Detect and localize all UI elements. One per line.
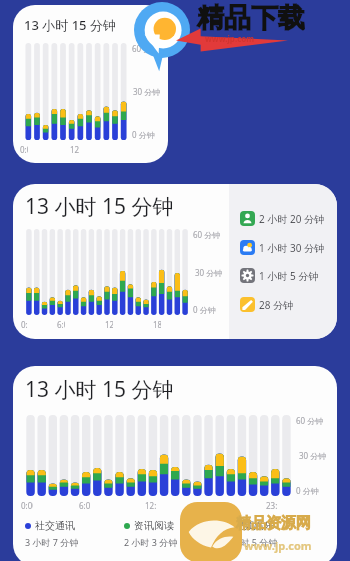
button[interactable]: Notes usage (240, 297, 333, 312)
staticText: 精品资源网 (236, 514, 311, 533)
button[interactable]: 13 小时 15 分钟 (13, 5, 168, 163)
staticText: 6:00 (57, 319, 65, 330)
staticText: 12:00 (70, 144, 79, 155)
staticText: 23:00 (266, 500, 277, 511)
staticText: 28 分钟 (259, 298, 294, 312)
staticText: 2 小时 3 分钟 (124, 536, 178, 548)
button[interactable]: Settings usage (240, 268, 333, 283)
other: Notes usage (240, 297, 255, 312)
staticText: 1 小时 5 分钟 (259, 269, 319, 283)
staticText: 0 分钟 (193, 304, 216, 315)
staticText: 3 小时 7 分钟 (25, 536, 79, 548)
staticText: 12:00 (105, 319, 113, 330)
staticText: 社交通讯 (35, 519, 75, 532)
staticText: 0 分钟 (132, 129, 155, 140)
other: Weather usage (240, 240, 255, 255)
staticText: 30 分钟 (195, 267, 223, 278)
staticText: 13 小时 15 分钟 (24, 16, 116, 34)
button[interactable]: 13 小时 15 分钟 (13, 184, 337, 339)
staticText: 18:00 (211, 500, 222, 511)
staticText: 30 分钟 (133, 86, 161, 97)
staticText: 60 分钟 (132, 43, 160, 54)
staticText: 1 小时 30 分钟 (259, 241, 324, 255)
button[interactable]: Contacts usage (240, 211, 333, 226)
staticText: 0:00 (21, 500, 33, 511)
button[interactable]: 资讯阅读 (124, 519, 224, 548)
staticText: 6:00 (79, 500, 90, 511)
button[interactable]: Weather usage (240, 240, 333, 255)
button[interactable]: 视频娱乐 (224, 519, 324, 548)
button[interactable]: 社交通讯 (25, 519, 124, 548)
staticText: 30 分钟 (299, 450, 327, 461)
other: Settings usage (240, 268, 255, 283)
staticText: 0:00 (20, 144, 28, 155)
staticText: 0:00 (21, 319, 28, 330)
staticText: 60 分钟 (296, 415, 324, 426)
staticText: 13 小时 15 分钟 (25, 192, 174, 221)
staticText: 资讯阅读 (134, 519, 174, 532)
staticText: 视频娱乐 (234, 519, 274, 532)
staticText: www.jp.com (205, 33, 255, 44)
staticText: www.jp.com (244, 538, 312, 553)
staticText: 60 分钟 (193, 229, 221, 240)
staticText: 12:00 (145, 500, 156, 511)
other: Contacts usage (240, 211, 255, 226)
staticText: 18:00 (153, 319, 161, 330)
staticText: 精品下载 (197, 1, 305, 35)
button[interactable]: 13 小时 15 分钟 (13, 366, 337, 561)
staticText: 1 小时 5 分钟 (224, 536, 278, 548)
staticText: 13 小时 15 分钟 (25, 375, 174, 404)
staticText: 2 小时 20 分钟 (259, 212, 324, 226)
staticText: 0 分钟 (296, 485, 319, 496)
